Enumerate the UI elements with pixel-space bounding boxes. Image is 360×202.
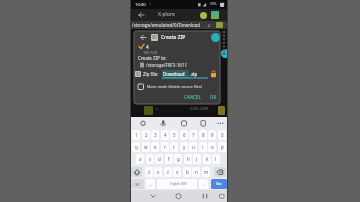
staticText: 50% <box>210 2 217 6</box>
button[interactable]: l <box>212 154 220 164</box>
button[interactable] <box>211 11 219 19</box>
button[interactable]: CANCEL <box>181 92 203 101</box>
staticText: e <box>154 144 157 150</box>
button[interactable] <box>211 33 220 42</box>
button[interactable] <box>144 189 164 202</box>
button[interactable] <box>169 189 189 202</box>
staticText: m <box>204 169 209 175</box>
staticText: a <box>139 156 142 162</box>
staticText: 4 <box>146 44 149 50</box>
staticText: w <box>144 144 148 150</box>
staticText: 0 <box>221 132 224 138</box>
button[interactable]: 1 <box>132 130 140 140</box>
staticText: !#1 <box>135 182 140 186</box>
staticText: f <box>168 156 170 162</box>
staticText: 8 <box>202 132 205 138</box>
button[interactable]: 7 <box>189 130 197 140</box>
staticText: Download <box>163 71 185 77</box>
button[interactable]: b <box>183 167 191 177</box>
button[interactable]: 4 <box>161 130 169 140</box>
button[interactable]: q <box>132 142 140 152</box>
button[interactable] <box>194 189 214 202</box>
button[interactable] <box>131 167 142 177</box>
staticText: Create ZIP to: <box>138 55 167 61</box>
button[interactable] <box>162 70 189 78</box>
button[interactable] <box>138 84 144 90</box>
staticText: /storage/emulated/0/Download <box>132 22 201 28</box>
staticText: j <box>196 156 198 162</box>
staticText: d <box>158 156 161 162</box>
staticText: r <box>164 144 166 150</box>
staticText: Move mode (delete source files) <box>147 84 202 89</box>
staticText: q <box>135 144 138 150</box>
button[interactable]: t <box>170 142 178 152</box>
button[interactable] <box>157 179 197 189</box>
staticText: 10:00 <box>135 2 146 8</box>
button[interactable]: a <box>136 154 144 164</box>
staticText: i <box>202 144 204 150</box>
button[interactable]: o <box>208 142 216 152</box>
staticText: DZRB 4.4MB <box>190 107 209 111</box>
staticText: n <box>195 169 198 175</box>
button[interactable]: OK <box>207 92 219 101</box>
button[interactable] <box>130 9 228 21</box>
staticText: Go <box>216 181 222 186</box>
staticText: z <box>148 169 151 175</box>
staticText: c <box>167 169 170 175</box>
button[interactable]: n <box>192 167 200 177</box>
button[interactable]: 9 <box>208 130 216 140</box>
button[interactable]: g <box>174 154 182 164</box>
staticText: x <box>157 169 160 175</box>
button[interactable]: , <box>146 179 155 189</box>
button[interactable] <box>200 12 207 19</box>
button[interactable]: p <box>218 142 226 152</box>
staticText: k <box>206 156 209 162</box>
button[interactable]: w <box>142 142 150 152</box>
button[interactable]: v <box>173 167 181 177</box>
button[interactable]: 3 <box>151 130 159 140</box>
button[interactable]: j <box>193 154 201 164</box>
button[interactable]: e <box>151 142 159 152</box>
button[interactable]: d <box>155 154 163 164</box>
staticText: u <box>192 144 195 150</box>
staticText: , <box>150 181 152 187</box>
button[interactable]: s <box>146 154 154 164</box>
staticText: h <box>187 156 190 162</box>
button[interactable]: !#1 <box>131 179 144 189</box>
staticText: y <box>183 144 186 150</box>
staticText: 186.1kB <box>143 50 157 55</box>
staticText: X-plore <box>158 11 175 18</box>
button[interactable]: i <box>199 142 207 152</box>
staticText: b <box>186 169 189 175</box>
staticText: Zip file: <box>143 71 159 77</box>
button[interactable]: z <box>145 167 153 177</box>
button[interactable]: h <box>184 154 192 164</box>
button[interactable]: x <box>154 167 162 177</box>
staticText: .zip <box>190 71 198 77</box>
button[interactable]: . <box>199 179 208 189</box>
button[interactable]: u <box>189 142 197 152</box>
button[interactable]: 5 <box>170 130 178 140</box>
button[interactable] <box>130 21 228 29</box>
button[interactable] <box>211 179 227 189</box>
button[interactable]: 2 <box>142 130 150 140</box>
button[interactable]: r <box>161 142 169 152</box>
button[interactable]: 0 <box>218 130 226 140</box>
button[interactable]: c <box>164 167 172 177</box>
staticText: 3 <box>154 132 157 138</box>
button[interactable]: m <box>202 167 210 177</box>
staticText: English (UK) <box>170 182 187 186</box>
button[interactable]: k <box>203 154 211 164</box>
staticText: l <box>215 156 217 162</box>
button[interactable]: y <box>180 142 188 152</box>
button[interactable]: 8 <box>199 130 207 140</box>
button[interactable]: 6 <box>180 130 188 140</box>
staticText: s <box>149 156 152 162</box>
staticText: 4 <box>164 132 167 138</box>
button[interactable]: f <box>165 154 173 164</box>
button[interactable] <box>214 167 226 177</box>
staticText: 6 <box>183 132 186 138</box>
staticText: g <box>177 156 180 162</box>
staticText: CANCEL <box>184 94 201 100</box>
staticText: :: <box>149 2 151 6</box>
